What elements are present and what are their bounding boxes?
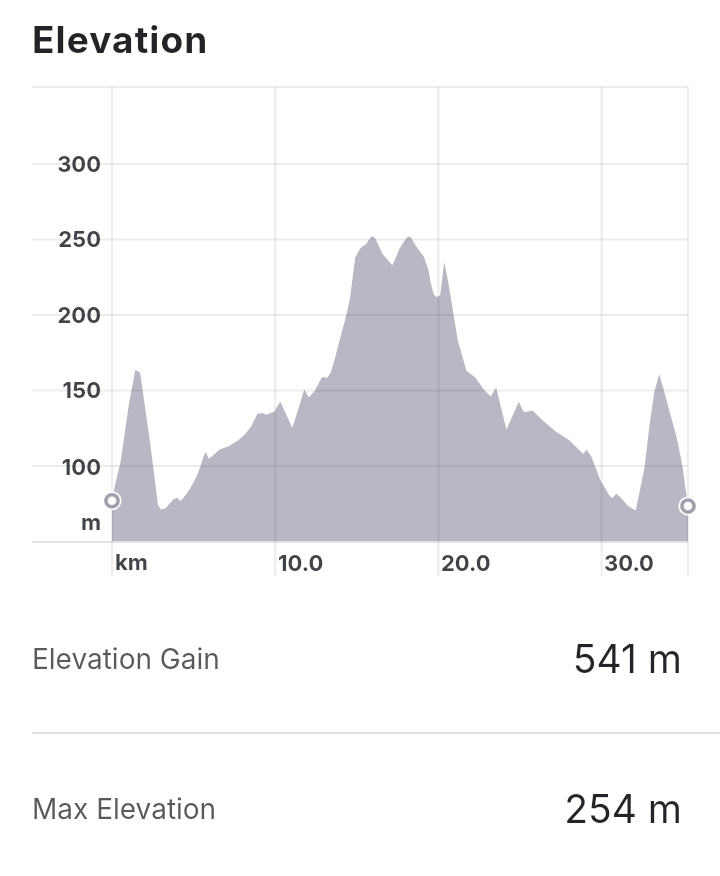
staticText: 200 xyxy=(0,302,101,329)
staticText: 150 xyxy=(0,377,101,404)
button[interactable]: Elevation Gain xyxy=(0,608,720,731)
staticText: 30.0 xyxy=(604,550,654,577)
staticText: 541 m xyxy=(0,635,682,682)
staticText: 100 xyxy=(0,454,101,481)
staticText: Elevation Gain xyxy=(32,642,220,676)
button[interactable]: Max Elevation xyxy=(0,758,720,876)
staticText: 10.0 xyxy=(278,550,324,577)
staticText: Elevation xyxy=(32,17,209,62)
staticText: 254 m xyxy=(0,785,682,832)
staticText: km xyxy=(115,549,148,576)
staticText: m xyxy=(0,509,101,536)
staticText: 300 xyxy=(0,151,101,178)
staticText: Max Elevation xyxy=(32,792,217,826)
staticText: 250 xyxy=(0,226,101,253)
staticText: 20.0 xyxy=(441,550,491,577)
